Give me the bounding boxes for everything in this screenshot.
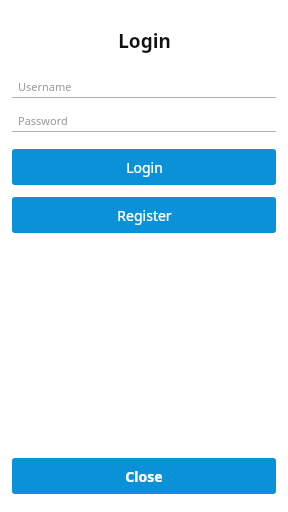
staticText: Username xyxy=(18,79,72,94)
button[interactable]: Close xyxy=(12,458,276,494)
button[interactable]: Username xyxy=(12,75,276,98)
button[interactable]: Login xyxy=(12,149,276,185)
staticText: Close xyxy=(125,467,163,486)
staticText: Register xyxy=(117,206,172,225)
button[interactable]: Password xyxy=(12,109,276,132)
staticText: Password xyxy=(18,113,68,128)
staticText: Login xyxy=(126,158,163,177)
button[interactable]: Register xyxy=(12,197,276,233)
staticText: Login xyxy=(118,28,171,54)
